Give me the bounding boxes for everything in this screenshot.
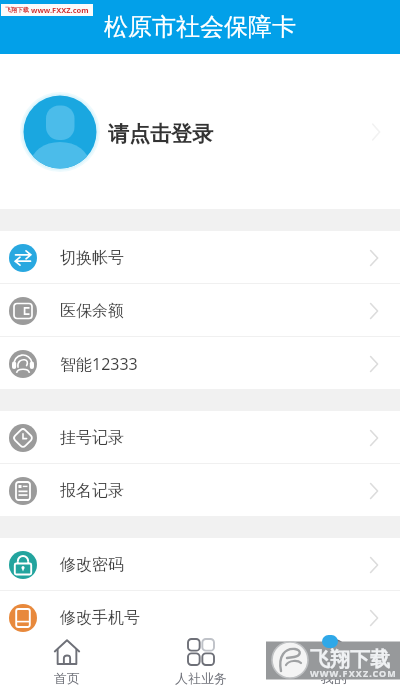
staticText: 请点击登录 (108, 121, 213, 147)
button[interactable]: 我的 (267, 634, 400, 690)
staticText: 松原市社会保障卡 (104, 12, 296, 42)
staticText: 智能12333 (60, 353, 138, 375)
button[interactable]: 人社业务 (134, 634, 267, 690)
staticText: WWW.FXXZ.COM (310, 667, 397, 679)
staticText: 挂号记录 (60, 428, 124, 448)
staticText: 切换帐号 (60, 248, 124, 268)
staticText: 人社业务 (175, 670, 227, 686)
button[interactable]: 请点击登录 (0, 54, 400, 209)
button[interactable]: 修改密码 (0, 538, 400, 590)
staticText: 修改手机号 (60, 608, 140, 628)
button[interactable]: 切换帐号 (0, 231, 400, 283)
button[interactable]: 智能12333 (0, 337, 400, 389)
staticText: 飞翔下载 (310, 647, 390, 672)
staticText: 修改密码 (60, 555, 124, 575)
button[interactable]: 挂号记录 (0, 411, 400, 463)
staticText: 报名记录 (60, 481, 124, 501)
staticText: 首页 (54, 670, 80, 686)
staticText: 医保余额 (60, 301, 124, 321)
button[interactable]: 报名记录 (0, 464, 400, 516)
button[interactable]: 医保余额 (0, 284, 400, 336)
button[interactable]: 首页 (0, 634, 134, 690)
button[interactable]: 修改手机号 (0, 591, 400, 643)
staticText: 飞翔下载 (5, 6, 29, 14)
staticText: 我的 (321, 670, 347, 686)
staticText: www.FXXZ.com (31, 5, 89, 15)
